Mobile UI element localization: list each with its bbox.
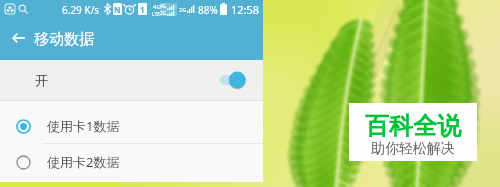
- staticText: 2G: [160, 10, 167, 16]
- staticText: 6.29 K/s: [62, 3, 100, 17]
- button[interactable]: 开: [0, 60, 263, 100]
- staticText: 助你轻松解决: [371, 140, 455, 158]
- staticText: 12:58: [231, 2, 260, 17]
- button[interactable]: Back: [6, 25, 31, 50]
- staticText: 移动数据: [34, 30, 94, 49]
- staticText: 1: [140, 4, 145, 15]
- staticText: 开: [35, 72, 48, 88]
- staticText: 88%: [198, 3, 218, 17]
- staticText: 4G: [153, 3, 161, 11]
- staticText: LTE: [152, 11, 161, 18]
- staticText: 使用卡1数据: [47, 117, 120, 135]
- staticText: 4G: [160, 3, 167, 10]
- staticText: 百科全说: [365, 111, 461, 141]
- staticText: N: [114, 4, 121, 15]
- button[interactable]: 使用卡1数据: [0, 108, 263, 144]
- staticText: 2G: [179, 6, 187, 13]
- staticText: 使用卡2数据: [47, 153, 120, 171]
- button[interactable]: 使用卡2数据: [0, 144, 263, 180]
